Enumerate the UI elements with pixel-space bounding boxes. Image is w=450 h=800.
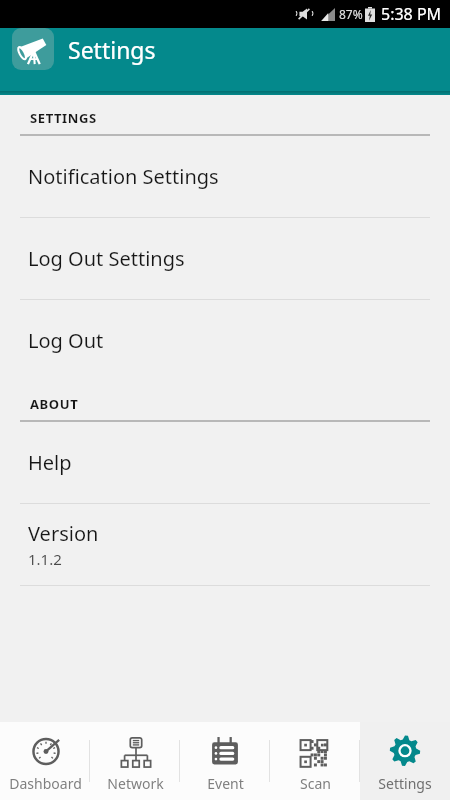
staticText: Log Out Settings xyxy=(28,245,185,272)
staticText: Settings xyxy=(68,34,156,65)
staticText: 87% xyxy=(339,6,363,22)
staticText: Log Out xyxy=(28,327,104,354)
staticText: Settings xyxy=(378,774,432,793)
button[interactable]: Scan xyxy=(270,722,360,800)
staticText: Notification Settings xyxy=(28,163,219,190)
button[interactable]: Network xyxy=(90,722,180,800)
staticText: Network xyxy=(107,774,164,793)
button[interactable]: Log Out Settings xyxy=(0,218,450,299)
button[interactable]: Version xyxy=(0,504,450,585)
staticText: 1.1.2 xyxy=(28,549,62,569)
staticText: Event xyxy=(207,774,244,793)
staticText: Scan xyxy=(300,774,331,793)
button[interactable]: Help xyxy=(0,422,450,503)
button[interactable]: Settings xyxy=(360,722,450,800)
button[interactable]: Notification Settings xyxy=(0,136,450,217)
button[interactable]: Dashboard xyxy=(0,722,90,800)
staticText: ABOUT xyxy=(30,395,79,413)
staticText: SETTINGS xyxy=(30,109,97,127)
button[interactable]: Log Out xyxy=(0,300,450,381)
staticText: Dashboard xyxy=(9,774,82,793)
staticText: 5:38 PM xyxy=(381,3,442,25)
button[interactable]: Event xyxy=(180,722,270,800)
staticText: Help xyxy=(28,449,72,476)
staticText: Version xyxy=(28,520,99,547)
